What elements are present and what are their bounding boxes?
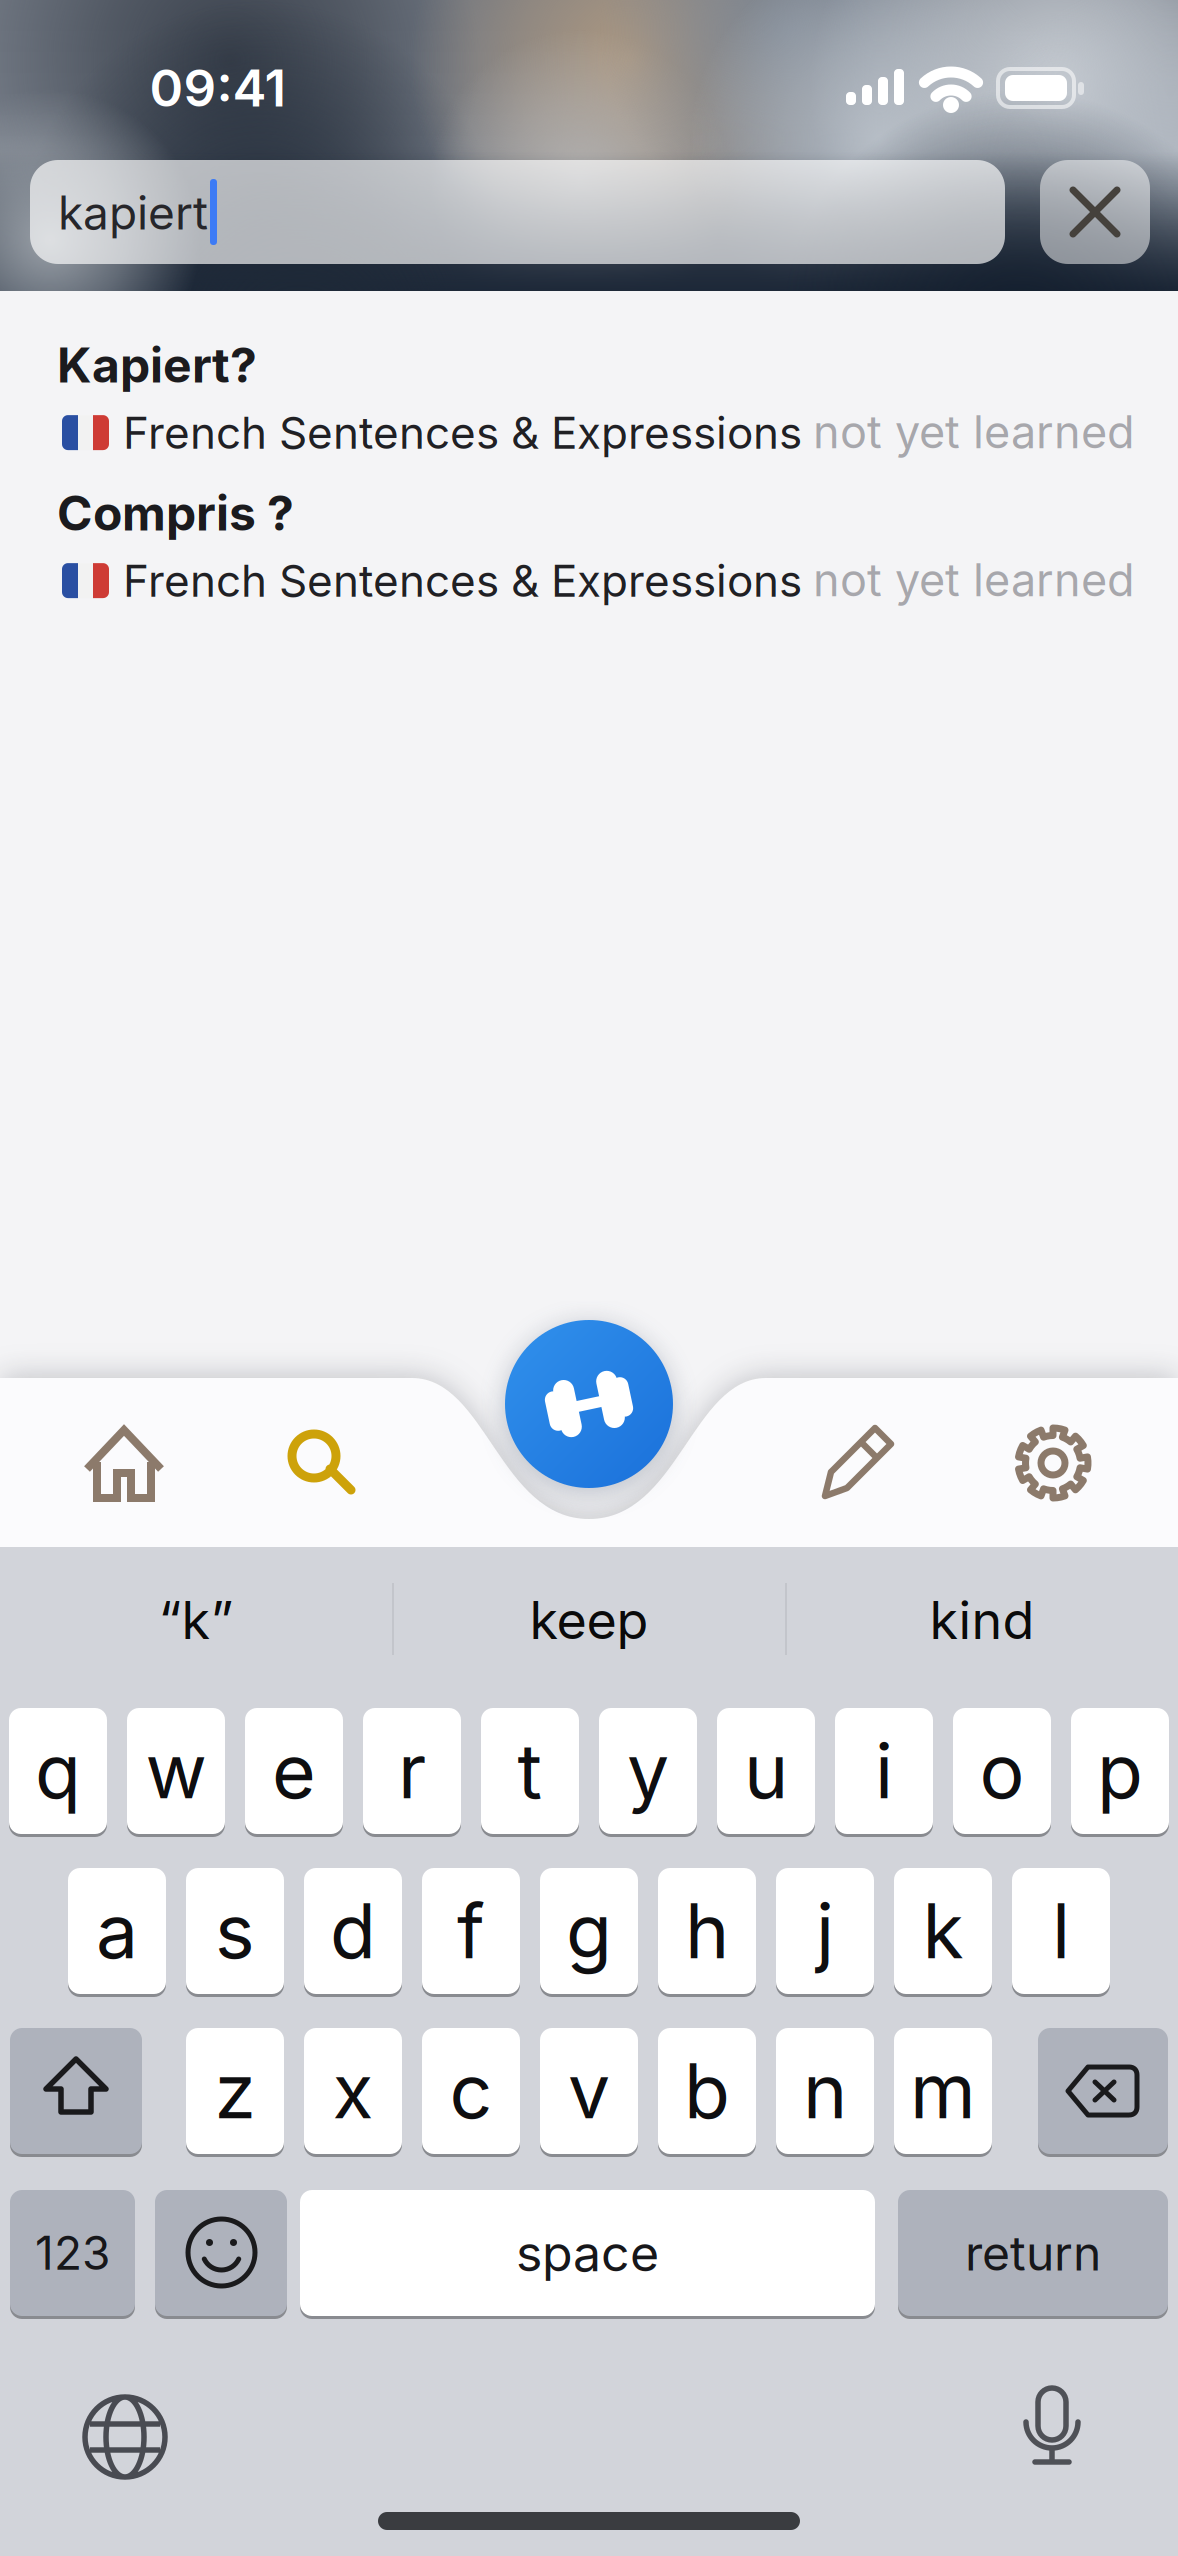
staticText: o	[979, 1726, 1024, 1816]
staticText: 123	[35, 2225, 110, 2281]
button[interactable]: 123	[10, 2190, 135, 2316]
staticText: 09:41	[149, 57, 286, 119]
button[interactable]	[982, 2360, 1122, 2500]
button[interactable]: p	[1071, 1708, 1169, 1834]
staticText: n	[803, 2046, 847, 2136]
button[interactable]: o	[953, 1708, 1051, 1834]
button[interactable]: e	[245, 1708, 343, 1834]
button[interactable]: f	[422, 1868, 520, 1994]
staticText: y	[627, 1726, 669, 1816]
button[interactable]: i	[835, 1708, 933, 1834]
staticText: French Sentences & Expressions	[123, 554, 802, 607]
staticText: t	[517, 1726, 542, 1816]
button[interactable]	[998, 1408, 1108, 1518]
button[interactable]: t	[481, 1708, 579, 1834]
staticText: j	[816, 1886, 834, 1976]
button[interactable]: z	[186, 2028, 284, 2154]
button[interactable]: keep	[399, 1560, 779, 1680]
button[interactable]: y	[599, 1708, 697, 1834]
button[interactable]	[1038, 2028, 1168, 2154]
button[interactable]: q	[9, 1708, 107, 1834]
button[interactable]: l	[1012, 1868, 1110, 1994]
staticText: d	[330, 1886, 376, 1976]
button[interactable]: space	[300, 2190, 875, 2316]
staticText: u	[744, 1726, 788, 1816]
button[interactable]: k	[894, 1868, 992, 1994]
button[interactable]: w	[127, 1708, 225, 1834]
button[interactable]: u	[717, 1708, 815, 1834]
staticText: r	[398, 1726, 426, 1816]
button[interactable]: r	[363, 1708, 461, 1834]
staticText: keep	[529, 1588, 648, 1651]
button[interactable]	[69, 1409, 179, 1519]
staticText: m	[910, 2046, 976, 2136]
staticText: s	[215, 1886, 255, 1976]
staticText: l	[1052, 1886, 1070, 1976]
button[interactable]	[155, 2190, 287, 2316]
button[interactable]: g	[540, 1868, 638, 1994]
button[interactable]: a	[68, 1868, 166, 1994]
button[interactable]	[263, 1405, 373, 1515]
staticText: a	[96, 1886, 138, 1976]
staticText: f	[457, 1886, 485, 1976]
staticText: Kapiert?	[57, 336, 257, 394]
button[interactable]: c	[422, 2028, 520, 2154]
button[interactable]: Kapiert?	[0, 336, 1178, 482]
staticText: French Sentences & Expressions	[123, 406, 802, 459]
staticText: c	[449, 2046, 492, 2136]
staticText: q	[35, 1726, 81, 1816]
staticText: Compris ?	[57, 484, 294, 542]
staticText: not yet learned	[813, 405, 1135, 459]
button[interactable]	[10, 2028, 142, 2154]
staticText: p	[1097, 1726, 1143, 1816]
staticText: k	[922, 1886, 963, 1976]
staticText: “k”	[158, 1588, 233, 1651]
staticText: not yet learned	[813, 553, 1135, 607]
button[interactable]	[1040, 160, 1150, 264]
button[interactable]: v	[540, 2028, 638, 2154]
button[interactable]: Compris ?	[0, 484, 1178, 630]
staticText: v	[568, 2046, 610, 2136]
button[interactable]: b	[658, 2028, 756, 2154]
button[interactable]: return	[898, 2190, 1168, 2316]
staticText: g	[566, 1886, 612, 1976]
button[interactable]: h	[658, 1868, 756, 1994]
staticText: h	[685, 1886, 729, 1976]
staticText: b	[684, 2046, 730, 2136]
staticText: z	[214, 2046, 255, 2136]
button[interactable]	[55, 2367, 195, 2507]
button[interactable]	[801, 1409, 911, 1519]
button[interactable]	[505, 1320, 673, 1488]
button[interactable]: j	[776, 1868, 874, 1994]
staticText: x	[332, 2046, 373, 2136]
staticText: kind	[929, 1588, 1034, 1651]
button[interactable]: d	[304, 1868, 402, 1994]
button[interactable]: n	[776, 2028, 874, 2154]
staticText: space	[516, 2223, 659, 2283]
staticText: kapiert	[58, 185, 208, 241]
staticText: e	[272, 1726, 316, 1816]
button[interactable]: kapiert	[30, 160, 1005, 264]
button[interactable]: x	[304, 2028, 402, 2154]
staticText: i	[875, 1726, 893, 1816]
button[interactable]: s	[186, 1868, 284, 1994]
staticText: return	[965, 2224, 1101, 2282]
button[interactable]: “k”	[6, 1560, 386, 1680]
button[interactable]: kind	[792, 1560, 1172, 1680]
button[interactable]: m	[894, 2028, 992, 2154]
staticText: w	[145, 1726, 206, 1816]
